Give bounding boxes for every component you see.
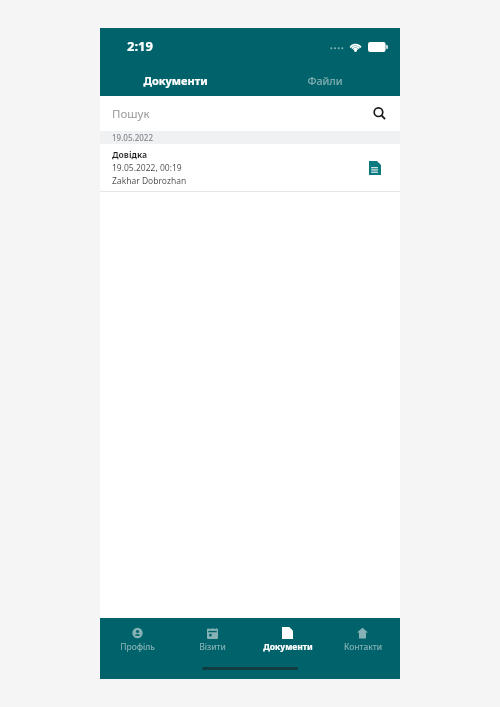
button[interactable]: Документи (250, 618, 325, 662)
staticText: 19.05.2022 (112, 132, 153, 143)
button[interactable]: Візити (175, 618, 250, 662)
button[interactable]: Документи (100, 64, 250, 96)
staticText: Візити (199, 641, 226, 653)
staticText: Профіль (120, 641, 155, 653)
button[interactable]: Довідка (100, 144, 400, 191)
staticText: Довідка (112, 149, 148, 161)
button[interactable]: Open document (362, 155, 388, 181)
button[interactable]: Файли (250, 64, 400, 96)
staticText: Файли (307, 73, 343, 88)
staticText: 2:19 (127, 37, 153, 55)
staticText: Контакти (344, 641, 382, 653)
staticText: Zakhar Dobrozhan (112, 175, 187, 187)
other: Search (373, 107, 386, 120)
staticText: Пошук (112, 106, 150, 122)
staticText: Документи (143, 73, 208, 88)
button[interactable]: Профіль (100, 618, 175, 662)
staticText: Документи (263, 641, 313, 653)
button[interactable]: Пошук (100, 96, 400, 131)
button[interactable]: Контакти (325, 618, 400, 662)
staticText: 19.05.2022, 00:19 (112, 162, 182, 174)
